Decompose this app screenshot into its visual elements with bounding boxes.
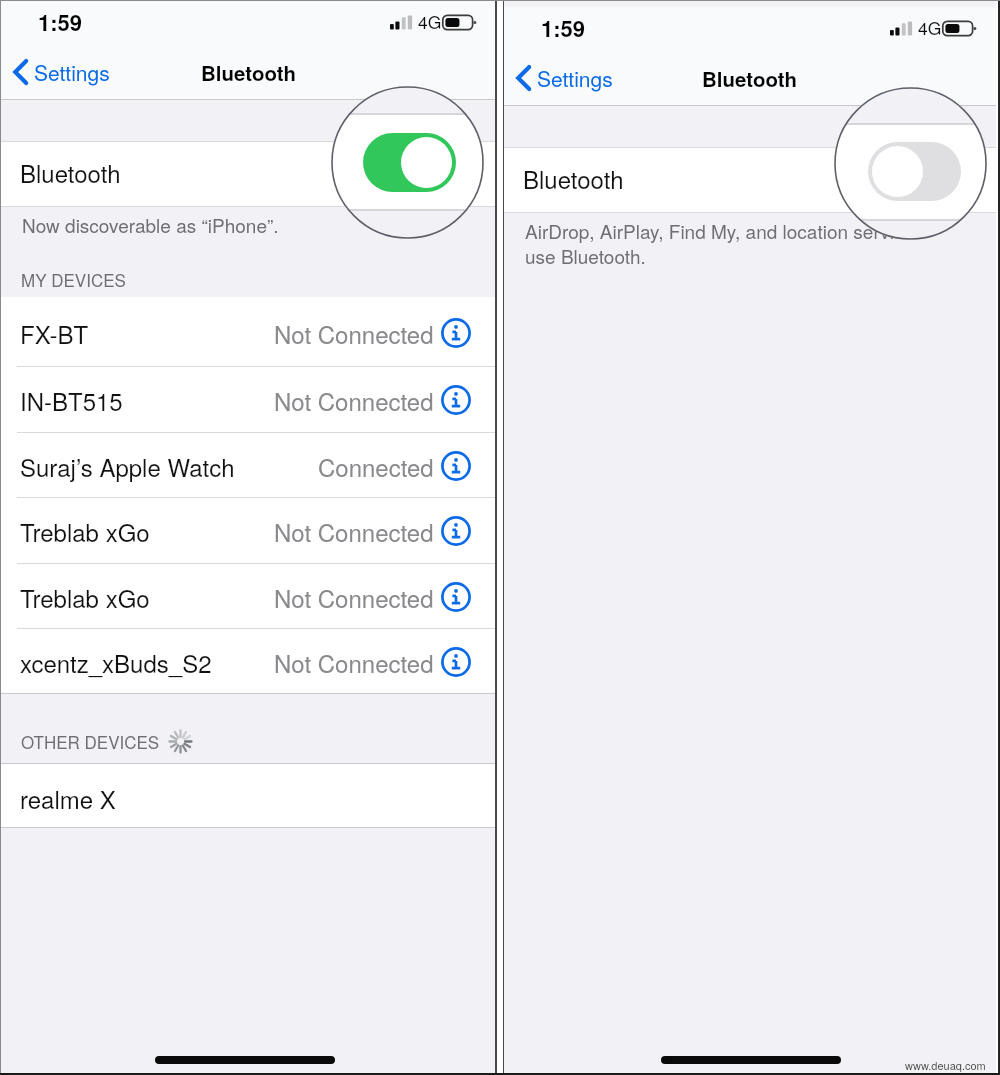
button[interactable]: Bluetooth toggle — [868, 142, 961, 201]
button[interactable]: Bluetooth — [1, 142, 496, 206]
button[interactable]: Device info — [440, 515, 472, 547]
staticText: Settings — [34, 57, 110, 87]
staticText: Settings — [537, 63, 613, 93]
staticText: AirDrop, AirPlay, Find My, and location … — [525, 217, 904, 244]
staticText: Suraj’s Apple Watch — [20, 449, 235, 483]
staticText: Not Connected — [274, 383, 434, 417]
staticText: Not Connected — [274, 645, 434, 679]
staticText: xcentz_xBuds_S2 — [20, 645, 212, 679]
staticText: Not Connected — [274, 580, 434, 614]
button[interactable]: Settings — [13, 57, 110, 87]
staticText: 4G — [918, 15, 942, 40]
button[interactable]: Device info — [440, 384, 472, 416]
button[interactable]: Treblab xGo — [1, 497, 496, 563]
staticText: Bluetooth — [702, 64, 798, 93]
button[interactable]: Treblab xGo — [1, 563, 496, 628]
button[interactable]: xcentz_xBuds_S2 — [1, 628, 496, 693]
button[interactable]: Settings — [516, 63, 613, 93]
button[interactable]: Suraj’s Apple Watch — [1, 432, 496, 497]
button[interactable]: Device info — [440, 450, 472, 482]
staticText: 1:59 — [38, 6, 83, 38]
staticText: Bluetooth — [523, 161, 624, 195]
button[interactable]: Device info — [440, 317, 472, 349]
staticText: Bluetooth — [201, 58, 297, 87]
button[interactable]: Device info — [440, 646, 472, 678]
staticText: Treblab xGo — [20, 580, 150, 614]
staticText: use Bluetooth. — [525, 242, 646, 269]
staticText: Now discoverable as “iPhone”. — [22, 211, 279, 238]
button[interactable]: IN-BT515 — [1, 366, 496, 432]
staticText: FX-BT — [20, 316, 89, 350]
staticText: 4G — [418, 9, 442, 34]
staticText: Not Connected — [274, 316, 434, 350]
button[interactable]: FX-BT — [1, 297, 496, 366]
staticText: OTHER DEVICES — [21, 729, 160, 753]
staticText: Connected — [318, 449, 434, 483]
staticText: Bluetooth — [20, 155, 121, 189]
button[interactable]: Device info — [440, 581, 472, 613]
staticText: www.deuaq.com — [905, 1057, 986, 1073]
staticText: MY DEVICES — [21, 267, 126, 291]
staticText: IN-BT515 — [20, 383, 123, 417]
button[interactable]: Bluetooth — [504, 148, 996, 212]
button[interactable]: Bluetooth toggle — [363, 133, 456, 192]
button[interactable]: realme X — [1, 764, 496, 827]
staticText: 1:59 — [541, 12, 586, 44]
staticText: Not Connected — [274, 514, 434, 548]
staticText: realme X — [20, 781, 116, 815]
staticText: Treblab xGo — [20, 514, 150, 548]
